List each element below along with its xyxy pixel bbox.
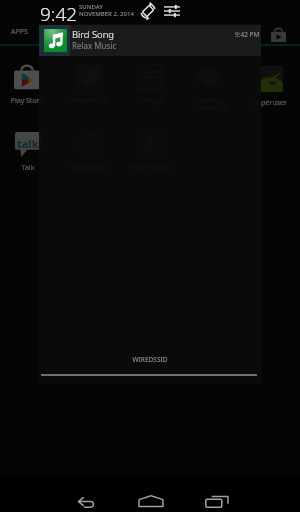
button[interactable]: Back: [66, 482, 106, 512]
button[interactable]: Play Store: [267, 24, 289, 46]
staticText: Play Store: [0, 96, 57, 106]
staticText: Superuser: [240, 98, 300, 108]
staticText: Relax Music: [72, 40, 117, 51]
button[interactable]: Quick settings: [162, 1, 182, 21]
button[interactable]: Recent apps: [198, 482, 238, 512]
staticText: WIREDSSID: [39, 355, 261, 364]
staticText: 9:42: [40, 1, 78, 27]
button[interactable]: talk: [0, 131, 58, 173]
staticText: WIDGETS: [44, 27, 75, 37]
staticText: 9:42 PM: [235, 30, 260, 39]
staticText: SUNDAY: [79, 3, 103, 11]
staticText: NOVEMBER 2, 2014: [79, 10, 134, 18]
staticText: Bird Song: [72, 28, 115, 41]
button[interactable]: Home: [132, 483, 172, 512]
button[interactable]: Play Store: [0, 64, 57, 106]
staticText: talk: [17, 136, 39, 151]
staticText: Talk: [0, 163, 58, 173]
button[interactable]: Superuser: [240, 66, 300, 108]
staticText: APPS: [11, 27, 28, 37]
button[interactable]: Bird Song: [39, 25, 261, 56]
button[interactable]: Rotation lock: [138, 1, 158, 21]
